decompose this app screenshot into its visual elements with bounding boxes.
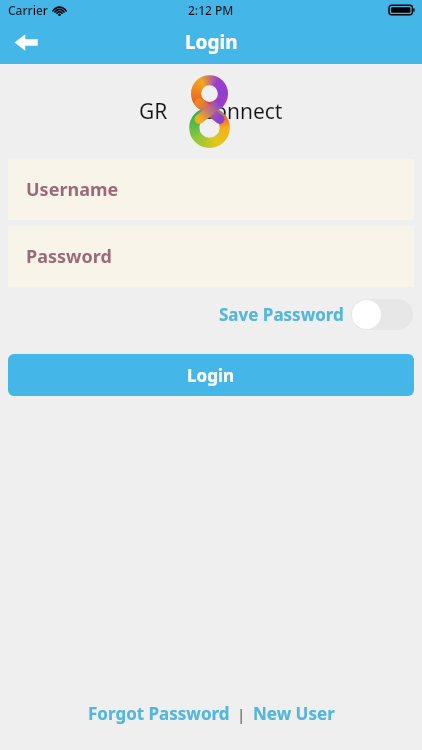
- staticText: Username: [26, 177, 119, 202]
- button[interactable]: Save Password: [211, 299, 413, 330]
- button[interactable]: Back: [0, 20, 52, 64]
- staticText: Save Password: [219, 303, 344, 326]
- button[interactable]: Password: [8, 226, 414, 287]
- other: Save Password toggle: [351, 299, 413, 330]
- button[interactable]: Login: [8, 354, 414, 396]
- staticText: Password: [26, 244, 112, 269]
- staticText: 2:12 PM: [188, 2, 234, 18]
- button[interactable]: Forgot Password: [86, 697, 232, 730]
- staticText: New User: [253, 702, 335, 725]
- staticText: Connect: [201, 97, 283, 126]
- staticText: Login: [187, 364, 235, 387]
- staticText: GR: [139, 97, 168, 126]
- staticText: Carrier: [8, 2, 48, 18]
- button[interactable]: Username: [8, 159, 414, 220]
- staticText: |: [237, 704, 246, 724]
- staticText: Forgot Password: [88, 702, 230, 725]
- button[interactable]: New User: [251, 697, 337, 730]
- staticText: Login: [185, 29, 238, 55]
